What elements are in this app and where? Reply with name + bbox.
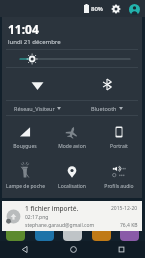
button[interactable]: App xyxy=(63,227,82,241)
button[interactable]: Settings xyxy=(109,2,123,16)
staticText: Profils audio xyxy=(104,183,134,190)
staticText: Localisation xyxy=(58,183,86,190)
button[interactable]: Back xyxy=(0,241,49,258)
staticText: Bluetooth xyxy=(91,105,117,112)
button[interactable]: App xyxy=(120,227,139,241)
staticText: Réseau_Visiteur xyxy=(14,105,55,112)
button[interactable]: Bluetooth xyxy=(72,101,142,115)
button[interactable]: Mode avion xyxy=(48,116,95,156)
button[interactable]: User profile xyxy=(127,2,141,16)
staticText: 11:04 xyxy=(8,21,39,37)
button[interactable]: Portrait xyxy=(95,116,142,156)
button[interactable]: Wi-Fi xyxy=(2,68,72,100)
staticText: Lampe de poche xyxy=(6,183,45,190)
button[interactable]: Réseau_Visiteur xyxy=(2,101,72,115)
staticText: stephane.garaud@gmail.com xyxy=(25,222,95,229)
staticText: 80% xyxy=(91,5,103,13)
staticText: 1 fichier importé. xyxy=(25,204,79,213)
button[interactable]: Profils audio xyxy=(95,156,142,196)
button[interactable]: App xyxy=(92,227,111,241)
button[interactable]: Recents xyxy=(97,241,145,258)
staticText: Portrait xyxy=(110,143,128,150)
staticText: lundi 21 décembre xyxy=(8,38,61,46)
button[interactable]: App xyxy=(6,227,25,241)
button[interactable]: Localisation xyxy=(48,156,95,196)
button[interactable]: 1 fichier importé. xyxy=(2,201,142,231)
staticText: Mode avion xyxy=(58,143,86,150)
button[interactable]: Bluetooth xyxy=(72,68,142,100)
staticText: 76,4 KB xyxy=(120,222,138,229)
staticText: 02:17.png xyxy=(25,214,49,221)
button[interactable]: Brightness xyxy=(2,50,142,67)
button[interactable]: Lampe de poche xyxy=(2,156,48,196)
button[interactable]: App xyxy=(35,227,54,241)
button[interactable]: Bouygues Telecom xyxy=(2,116,48,156)
button[interactable]: Home xyxy=(49,241,97,258)
staticText: 2015-12-20 xyxy=(111,205,138,212)
staticText: Bouygues Telecom xyxy=(3,143,47,150)
